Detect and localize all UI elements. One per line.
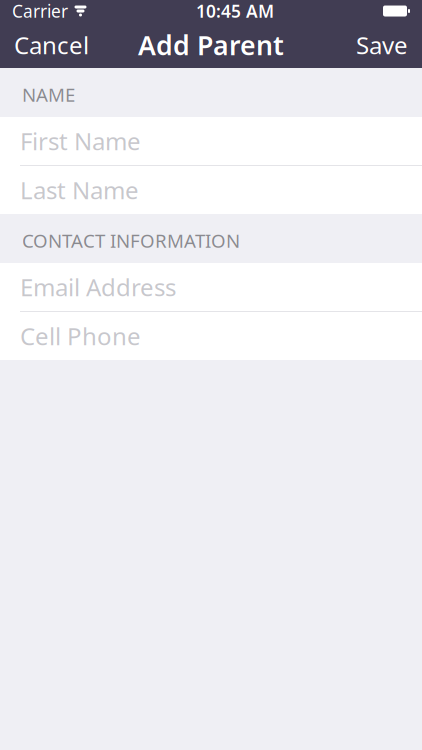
staticText: Save	[356, 29, 408, 61]
button[interactable]: Save	[344, 21, 422, 69]
staticText: First Name	[20, 125, 141, 157]
staticText: Carrier	[12, 0, 68, 22]
staticText: Cell Phone	[20, 320, 141, 352]
button[interactable]: Cancel	[0, 21, 101, 69]
staticText: Cancel	[14, 29, 89, 61]
staticText: Last Name	[20, 174, 139, 206]
staticText: 10:45 AM	[196, 0, 274, 22]
button[interactable]: Cell Phone	[0, 312, 422, 360]
staticText: NAME	[22, 82, 75, 107]
staticText: Email Address	[20, 271, 176, 303]
button[interactable]: First Name	[0, 117, 422, 165]
staticText: CONTACT INFORMATION	[22, 228, 240, 253]
button[interactable]: Email Address	[0, 263, 422, 311]
button[interactable]: Last Name	[0, 166, 422, 214]
staticText: Add Parent	[138, 27, 284, 63]
